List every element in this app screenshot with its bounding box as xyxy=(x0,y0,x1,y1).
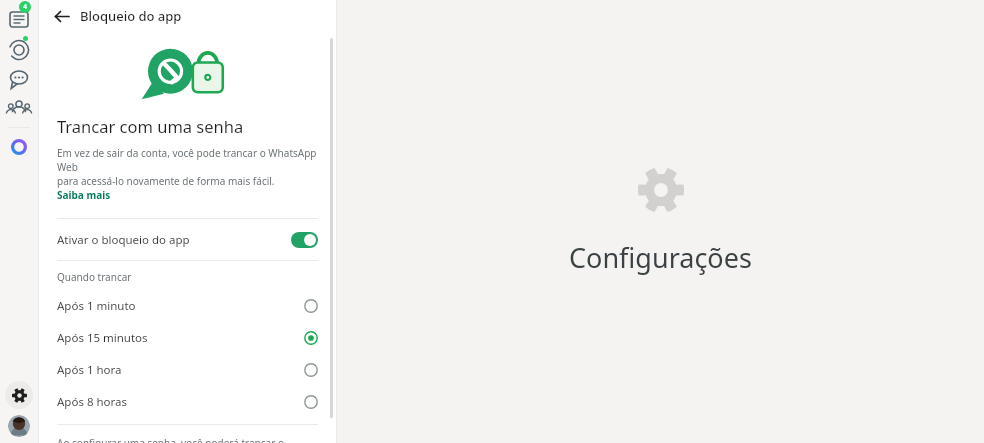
button[interactable]: Ativar o bloqueio do app xyxy=(39,219,336,260)
button[interactable]: Conversas xyxy=(0,4,38,34)
staticText: 4 xyxy=(23,2,28,12)
staticText: Ativar o bloqueio do app xyxy=(57,232,190,248)
button[interactable]: Comunidades xyxy=(0,94,38,124)
staticText: Bloqueio do app xyxy=(80,7,182,25)
staticText: Quando trancar xyxy=(57,270,132,284)
staticText: Após 1 minuto xyxy=(57,298,136,314)
staticText: Após 15 minutos xyxy=(57,330,148,346)
staticText: Trancar com uma senha xyxy=(57,115,244,137)
button[interactable]: Meta AI xyxy=(0,132,38,162)
button[interactable]: Após 15 minutos xyxy=(39,322,336,354)
staticText: Após 8 horas xyxy=(57,394,127,410)
button[interactable]: Voltar xyxy=(49,4,73,28)
button[interactable]: Perfil xyxy=(8,415,30,437)
staticText: Configurações xyxy=(569,239,752,276)
button[interactable]: Após 1 minuto xyxy=(39,290,336,322)
button[interactable]: Após 8 horas xyxy=(39,386,336,418)
button[interactable]: Atualizações xyxy=(0,34,38,64)
button[interactable]: Configurações xyxy=(5,381,33,409)
staticText: Saiba mais xyxy=(57,188,111,202)
staticText: Ao configurar uma senha, você poderá tra… xyxy=(57,436,318,443)
staticText: Em vez de sair da conta, você pode tranc… xyxy=(57,146,318,188)
staticText: Após 1 hora xyxy=(57,362,122,378)
button[interactable]: Canais xyxy=(0,64,38,94)
button[interactable]: Após 1 hora xyxy=(39,354,336,386)
button[interactable]: Saiba mais xyxy=(57,188,111,202)
